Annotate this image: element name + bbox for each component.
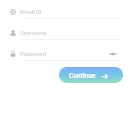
- staticText: Username: [20, 30, 47, 37]
- button[interactable]: Show password: [107, 49, 118, 60]
- staticText: Email ID: [20, 9, 42, 16]
- staticText: Password: [20, 51, 47, 58]
- staticText: Continue: [69, 72, 96, 80]
- button[interactable]: Continue: [59, 67, 123, 83]
- button[interactable]: Email ID: [0, 2, 130, 19]
- button[interactable]: Username: [0, 23, 130, 40]
- button[interactable]: Password: [0, 44, 130, 61]
